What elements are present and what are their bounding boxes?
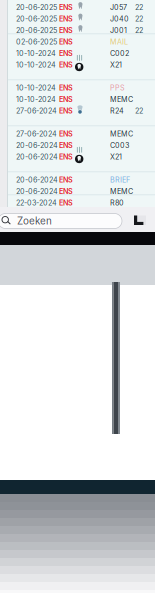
staticText: J001 bbox=[110, 26, 127, 35]
staticText: 20-06-2025 bbox=[16, 26, 57, 35]
staticText: 02-06-2025 bbox=[16, 37, 57, 46]
staticText: 10-10-2024 bbox=[16, 95, 56, 104]
staticText: ENS bbox=[59, 3, 73, 12]
staticText: X21 bbox=[110, 152, 122, 161]
staticText: 27-06-2024 bbox=[16, 129, 57, 138]
button[interactable]: Zoeken bbox=[0, 213, 122, 228]
staticText: ENS bbox=[59, 49, 73, 58]
staticText: X21 bbox=[110, 60, 122, 69]
staticText: R24 bbox=[110, 106, 124, 115]
button[interactable]: 20-06-2024 bbox=[8, 172, 155, 184]
button[interactable]: 22-03-2024 bbox=[8, 195, 155, 207]
staticText: 27-06-2024 bbox=[16, 106, 57, 115]
staticText: ENS bbox=[59, 141, 73, 150]
button[interactable]: 27-06-2024 bbox=[8, 103, 155, 115]
staticText: Zoeken bbox=[17, 215, 52, 227]
staticText: 20-06-2024 bbox=[16, 152, 58, 161]
staticText: 20-06-2024 bbox=[16, 187, 58, 196]
staticText: 10-10-2024 bbox=[16, 83, 56, 92]
staticText: 20-06-2025 bbox=[16, 3, 57, 12]
staticText: PPS bbox=[110, 83, 125, 92]
button[interactable]: 20-06-2024 bbox=[8, 138, 155, 149]
staticText: C003 bbox=[110, 141, 129, 150]
staticText: J040 bbox=[110, 14, 129, 23]
button[interactable]: 10-10-2024 bbox=[8, 57, 155, 69]
staticText: ENS bbox=[59, 152, 73, 161]
staticText: ENS bbox=[59, 60, 73, 69]
staticText: 20-06-2024 bbox=[16, 141, 58, 150]
button[interactable]: 20-06-2025 bbox=[8, 11, 155, 23]
staticText: 20-06-2024 bbox=[16, 175, 58, 184]
staticText: 22 bbox=[135, 14, 143, 23]
button[interactable]: 27-06-2024 bbox=[8, 126, 155, 138]
staticText: MAIL bbox=[110, 37, 128, 46]
staticText: 22 bbox=[135, 106, 143, 115]
button[interactable]: 20-06-2024 bbox=[8, 184, 155, 195]
button[interactable]: 20-06-2025 bbox=[8, 0, 155, 11]
staticText: MEMC bbox=[110, 95, 133, 104]
staticText: BRIEF bbox=[110, 175, 130, 184]
staticText: ENS bbox=[59, 95, 73, 104]
button[interactable]: 10-10-2024 bbox=[8, 80, 155, 92]
staticText: ENS bbox=[59, 129, 73, 138]
button[interactable]: Task view bbox=[134, 215, 146, 225]
staticText: 10-10-2024 bbox=[16, 60, 56, 69]
button[interactable]: 20-06-2025 bbox=[8, 23, 155, 34]
button[interactable]: 10-10-2024 bbox=[8, 92, 155, 103]
staticText: 10-10-2024 bbox=[16, 49, 56, 58]
button[interactable]: 20-06-2024 bbox=[8, 149, 155, 161]
staticText: ENS bbox=[59, 14, 73, 23]
staticText: R80 bbox=[110, 198, 124, 207]
staticText: 22-03-2024 bbox=[16, 198, 57, 207]
staticText: MEMC bbox=[110, 187, 133, 196]
staticText: 22 bbox=[135, 3, 143, 12]
staticText: ENS bbox=[59, 37, 73, 46]
button[interactable]: 10-10-2024 bbox=[8, 46, 155, 57]
staticText: 20-06-2025 bbox=[16, 14, 57, 23]
staticText: J057 bbox=[110, 3, 127, 12]
staticText: ENS bbox=[59, 83, 73, 92]
staticText: 22 bbox=[135, 26, 143, 35]
staticText: ENS bbox=[59, 187, 73, 196]
staticText: C002 bbox=[110, 49, 129, 58]
staticText: ENS bbox=[59, 106, 73, 115]
button[interactable]: 02-06-2025 bbox=[8, 34, 155, 46]
staticText: ENS bbox=[59, 198, 73, 207]
staticText: ENS bbox=[59, 175, 73, 184]
staticText: ENS bbox=[59, 26, 73, 35]
staticText: MEMC bbox=[110, 129, 133, 138]
